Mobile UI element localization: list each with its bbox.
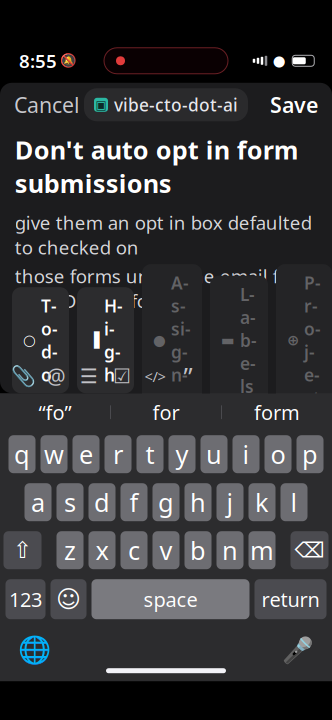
button[interactable]: ○ xyxy=(12,287,69,393)
staticText: ○ xyxy=(23,332,36,348)
staticText: v xyxy=(159,533,172,567)
button[interactable]: Attach xyxy=(8,361,38,391)
staticText: @ xyxy=(46,362,65,390)
staticText: d xyxy=(94,485,110,519)
staticText: </> xyxy=(144,366,165,386)
button[interactable]: ▐ xyxy=(77,287,134,393)
button[interactable]: Emoji xyxy=(50,579,86,619)
staticText: return xyxy=(261,586,319,612)
button[interactable]: ▣ xyxy=(84,88,248,121)
button[interactable]: g xyxy=(152,483,179,521)
button[interactable]: b xyxy=(184,531,211,569)
staticText: 🎤 xyxy=(282,636,314,665)
button[interactable]: c xyxy=(120,531,147,569)
staticText: High xyxy=(104,294,123,386)
staticText: e xyxy=(79,437,93,471)
button[interactable]: e xyxy=(72,435,99,473)
button[interactable]: u xyxy=(200,435,227,473)
staticText: ▣ xyxy=(95,98,106,112)
button[interactable]: ● xyxy=(142,264,202,416)
staticText: c xyxy=(128,533,140,567)
button[interactable]: q xyxy=(8,435,35,473)
button[interactable]: return xyxy=(254,579,326,619)
staticText: Cancel xyxy=(14,91,80,119)
staticText: ● xyxy=(153,332,166,348)
button[interactable]: Quote xyxy=(173,361,203,391)
staticText: “fo” xyxy=(38,399,71,425)
button[interactable]: a xyxy=(24,483,51,521)
button[interactable]: t xyxy=(136,435,163,473)
staticText: b xyxy=(190,533,206,567)
staticText: 🌐 xyxy=(17,635,50,665)
staticText: i xyxy=(242,437,249,471)
button[interactable]: o xyxy=(264,435,291,473)
staticText: 123 xyxy=(9,586,42,612)
button[interactable]: Cancel xyxy=(0,83,94,127)
button[interactable]: m xyxy=(248,531,275,569)
button[interactable]: ▬ xyxy=(210,276,268,405)
button[interactable]: Save xyxy=(256,83,332,127)
button[interactable]: Mention xyxy=(41,361,71,391)
staticText: z xyxy=(64,533,76,567)
button[interactable]: p xyxy=(296,435,323,473)
button[interactable]: ⊕ xyxy=(276,264,332,416)
staticText: give them an opt in box defaulted to che… xyxy=(15,210,312,260)
button[interactable]: space xyxy=(91,579,249,619)
button[interactable]: y xyxy=(168,435,195,473)
staticText: ⌫ xyxy=(294,538,324,562)
staticText: ☰ xyxy=(80,365,98,388)
staticText: g xyxy=(158,485,174,519)
staticText: 🔕 xyxy=(60,53,77,68)
button[interactable]: x xyxy=(88,531,115,569)
staticText: Project xyxy=(304,271,321,409)
staticText: w xyxy=(44,437,64,471)
staticText: a xyxy=(31,485,45,519)
button[interactable]: Switch keyboard xyxy=(14,630,54,670)
staticText: m xyxy=(250,533,274,567)
staticText: t xyxy=(145,437,154,471)
staticText: k xyxy=(255,485,269,519)
button[interactable]: h xyxy=(184,483,211,521)
staticText: ▐ xyxy=(88,332,99,348)
staticText: Save xyxy=(270,91,318,119)
staticText: ● xyxy=(273,52,286,69)
button[interactable]: Shift xyxy=(3,531,41,569)
staticText: ⊕ xyxy=(287,332,299,348)
button[interactable]: s xyxy=(56,483,83,521)
button[interactable]: Checklist xyxy=(107,361,137,391)
button[interactable]: j xyxy=(216,483,243,521)
button[interactable]: for xyxy=(111,394,221,430)
button[interactable]: Code xyxy=(140,361,170,391)
button[interactable]: Delete xyxy=(290,531,328,569)
staticText: ⇧ xyxy=(13,537,32,563)
staticText: Assignee xyxy=(171,271,191,409)
button[interactable]: l xyxy=(280,483,307,521)
button[interactable]: d xyxy=(88,483,115,521)
staticText: n xyxy=(222,533,238,567)
button[interactable]: z xyxy=(56,531,83,569)
staticText: j xyxy=(226,485,233,519)
staticText: ” xyxy=(183,359,192,393)
staticText: l xyxy=(290,485,297,519)
button[interactable]: n xyxy=(216,531,243,569)
staticText: those forms under the email form field. … xyxy=(15,264,315,313)
staticText: for xyxy=(152,399,179,425)
button[interactable]: form xyxy=(222,394,332,430)
button[interactable]: k xyxy=(248,483,275,521)
button[interactable]: f xyxy=(120,483,147,521)
staticText: y xyxy=(175,437,188,471)
staticText: r xyxy=(113,437,123,471)
staticText: o xyxy=(270,437,285,471)
staticText: f xyxy=(129,485,138,519)
staticText: s xyxy=(64,485,76,519)
staticText: x xyxy=(95,533,108,567)
button[interactable]: 123 xyxy=(5,579,45,619)
button[interactable]: “fo” xyxy=(0,394,110,430)
button[interactable]: i xyxy=(232,435,259,473)
button[interactable]: Bulleted list xyxy=(74,361,104,391)
button[interactable]: v xyxy=(152,531,179,569)
staticText: h xyxy=(190,485,206,519)
button[interactable]: Dictation xyxy=(278,630,318,670)
button[interactable]: r xyxy=(104,435,131,473)
button[interactable]: w xyxy=(40,435,67,473)
